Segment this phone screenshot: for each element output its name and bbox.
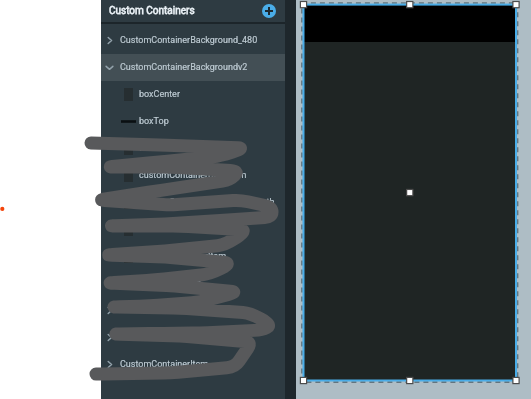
staticText: boxTop (139, 116, 169, 127)
staticText: Custom Containers (109, 5, 195, 17)
staticText: CustomContainerBackgroundv2 (120, 62, 248, 73)
staticText: CustomContainerElem (120, 332, 211, 343)
button[interactable]: customContainerItem (101, 243, 285, 270)
button[interactable]: boxCenter (101, 81, 285, 108)
button[interactable]: customContainerTextV (101, 216, 285, 243)
button[interactable]: CustomContainerDateTimeHd (101, 297, 285, 324)
staticText: boxCenter (139, 89, 180, 100)
staticText: CustomContainerItem (120, 359, 209, 370)
button[interactable]: CustomContainerBackgroundv2 (101, 54, 285, 81)
button[interactable]: customContainerBackgroundBoth (101, 189, 285, 216)
staticText: customContainerDateElem (139, 170, 247, 181)
staticText: customContainerBackgroundBoth (139, 197, 275, 208)
button[interactable]: Custom Containers (101, 0, 285, 22)
button[interactable]: Add container (259, 1, 279, 21)
staticText: CustomContainerBackground_480 (120, 35, 258, 46)
button[interactable]: customContainerDateElem (101, 162, 285, 189)
button[interactable]: boxTop (101, 108, 285, 135)
button[interactable]: CustomContainerItem (101, 351, 285, 378)
button[interactable]: CustomContainerElem (101, 324, 285, 351)
staticText: textLinearEventItem (139, 143, 219, 154)
button[interactable]: CustomContainerBg (101, 270, 285, 297)
staticText: customContainerTextV (139, 224, 231, 235)
button[interactable]: CustomContainerBackground_480 (101, 27, 285, 54)
staticText: CustomContainerDateTimeHd (120, 305, 241, 316)
staticText: customContainerItem (139, 251, 227, 262)
button[interactable]: textLinearEventItem (101, 135, 285, 162)
